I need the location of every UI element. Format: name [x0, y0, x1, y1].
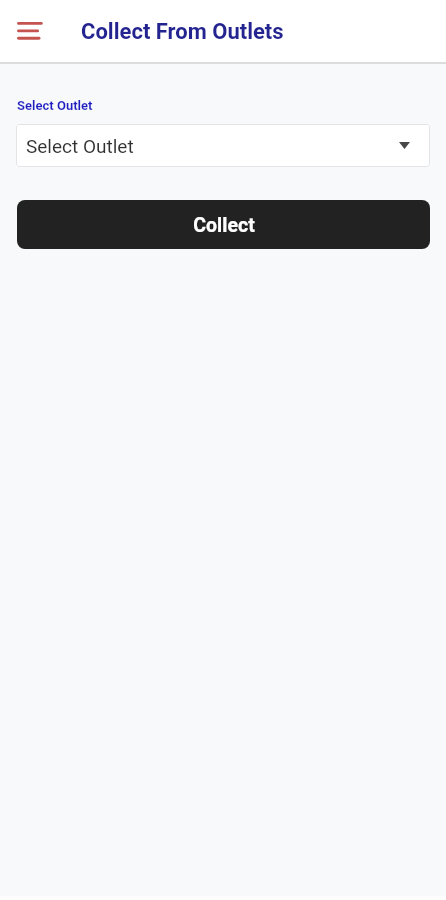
- staticText: Select Outlet: [17, 98, 93, 113]
- button[interactable]: Open navigation menu: [5, 8, 53, 56]
- button[interactable]: Select Outlet: [16, 124, 430, 167]
- staticText: Collect From Outlets: [81, 19, 284, 45]
- button[interactable]: Collect: [17, 200, 430, 249]
- staticText: Collect: [193, 214, 255, 237]
- staticText: Select Outlet: [26, 135, 134, 157]
